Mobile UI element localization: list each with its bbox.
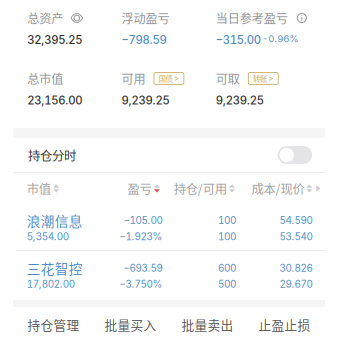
staticText: 23,156.00: [27, 94, 82, 107]
button[interactable]: 批量买入: [104, 305, 181, 346]
staticText: 500: [218, 278, 236, 290]
staticText: 100: [218, 214, 236, 226]
staticText: 浮动盈亏: [121, 9, 169, 27]
button[interactable]: 浪潮信息: [0, 203, 338, 250]
staticText: 持仓/可用: [174, 179, 227, 197]
button[interactable]: 转账: [248, 73, 278, 84]
staticText: 止盈止损: [258, 315, 310, 334]
staticText: 总资产: [27, 9, 63, 27]
button[interactable]: 批量卖出: [181, 305, 258, 346]
staticText: 53.540: [279, 230, 312, 242]
button[interactable]: 止盈止损: [258, 305, 335, 346]
staticText: 9,239.25: [121, 94, 169, 107]
button[interactable]: 持仓管理: [27, 305, 104, 346]
staticText: 可用: [121, 70, 145, 87]
staticText: 总市值: [27, 70, 63, 87]
staticText: 持仓管理: [27, 315, 79, 334]
staticText: −315.00: [216, 33, 261, 47]
staticText: 当日参考盈亏: [216, 9, 288, 27]
button[interactable]: 国债: [154, 73, 184, 84]
staticText: 17,802.00: [27, 278, 75, 290]
staticText: 54.590: [279, 214, 312, 226]
staticText: 100: [218, 230, 236, 242]
staticText: −3.750%: [119, 278, 162, 290]
staticText: 32,395.25: [27, 33, 82, 47]
staticText: 9,239.25: [216, 94, 264, 107]
staticText: 600: [218, 262, 236, 274]
staticText: −798.59: [121, 33, 166, 47]
button[interactable]: 三花智控: [0, 251, 338, 299]
staticText: 可取: [216, 70, 240, 87]
staticText: 批量卖出: [181, 315, 233, 334]
staticText: 批量买入: [104, 315, 156, 334]
staticText: −1.923%: [119, 230, 162, 242]
staticText: 盈亏: [127, 179, 151, 197]
staticText: 30.826: [279, 262, 312, 274]
staticText: 转账: [253, 73, 267, 84]
staticText: 29.670: [279, 278, 312, 290]
button[interactable]: 持仓分时: [278, 146, 312, 164]
staticText: 持仓分时: [28, 146, 76, 164]
staticText: −693.59: [123, 262, 162, 274]
staticText: 5,354.00: [27, 230, 69, 242]
staticText: 三花智控: [27, 258, 83, 278]
staticText: −105.00: [123, 214, 162, 226]
staticText: >: [268, 74, 273, 83]
staticText: >: [174, 74, 179, 83]
staticText: 浪潮信息: [27, 211, 83, 230]
staticText: -0.96%: [262, 33, 298, 45]
staticText: 国债: [159, 73, 173, 84]
staticText: 市值: [27, 179, 51, 197]
staticText: 成本/现价: [251, 179, 304, 197]
